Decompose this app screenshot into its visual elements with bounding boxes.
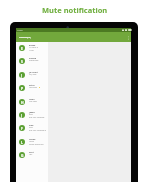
button[interactable]: H — [16, 96, 48, 109]
staticText: Sanjud — [29, 57, 37, 60]
staticText: Day — [29, 113, 33, 116]
staticText: Tiki cam — [29, 100, 38, 103]
staticText: Hey equ — [29, 86, 38, 89]
staticText: Good afternoo — [29, 143, 44, 146]
staticText: L — [21, 140, 23, 145]
button[interactable]: J — [16, 109, 48, 122]
staticText: Peter — [29, 84, 35, 87]
staticText: Day — [29, 126, 33, 129]
staticText: +325 — [29, 49, 34, 52]
staticText: E — [21, 46, 23, 51]
staticText: Lillian — [29, 138, 36, 141]
button[interactable]: E — [16, 42, 48, 55]
staticText: Eriska — [29, 44, 36, 47]
staticText: F — [21, 126, 23, 131]
button[interactable]: L — [16, 136, 48, 149]
staticText: Yes — [29, 153, 33, 156]
staticText: Mr, and — [29, 73, 37, 76]
button[interactable]: J — [16, 69, 48, 82]
staticText: J — [21, 73, 23, 78]
staticText: Jaxon — [29, 111, 35, 114]
button[interactable]: F — [16, 122, 48, 135]
staticText: G — [21, 153, 24, 158]
button[interactable]: More options — [125, 33, 131, 42]
button[interactable]: Advance(M) — [16, 36, 31, 39]
staticText: Preferred — [29, 59, 39, 62]
staticText: All calls a — [29, 46, 38, 49]
staticText: H — [21, 100, 24, 105]
staticText: J — [21, 113, 23, 118]
staticText: S — [21, 59, 23, 64]
button[interactable]: S — [16, 55, 48, 68]
staticText: Hana — [29, 98, 35, 101]
staticText: Gert — [29, 151, 34, 154]
staticText: P — [21, 86, 24, 91]
button[interactable]: G — [16, 149, 48, 162]
staticText: Hello — [29, 140, 35, 143]
staticText: 12:30 — [17, 29, 23, 32]
staticText: Jk Script — [29, 71, 38, 74]
staticText: Mute notification — [42, 5, 108, 15]
staticText: are you coming p — [29, 129, 47, 132]
staticText: are you coming — [29, 116, 45, 119]
staticText: Flan — [29, 124, 34, 127]
button[interactable]: P — [16, 82, 48, 95]
